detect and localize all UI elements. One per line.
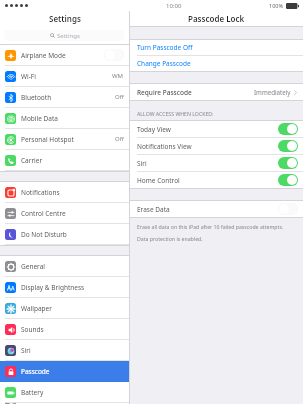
staticText: Carrier [21, 156, 43, 165]
button[interactable]: Personal Hotspot [0, 129, 129, 149]
staticText: Require Passcode [137, 88, 192, 97]
staticText: ALLOW ACCESS WHEN LOCKED: [137, 110, 214, 117]
button[interactable]: General [0, 256, 129, 276]
button[interactable]: Control Centre [0, 203, 129, 223]
button[interactable]: Notifications [0, 182, 129, 202]
button[interactable]: Settings [5, 30, 124, 41]
button[interactable]: Passcode [0, 361, 129, 381]
button[interactable]: On [278, 123, 298, 135]
staticText: Today View [137, 125, 171, 134]
staticText: Personal Hotspot [21, 135, 74, 144]
button[interactable]: On [278, 174, 298, 186]
button[interactable]: Change Passcode [130, 56, 303, 71]
staticText: Bluetooth [21, 93, 52, 102]
staticText: Home Control [137, 176, 180, 185]
button[interactable]: Mobile Data [0, 108, 129, 128]
staticText: Settings [49, 13, 81, 24]
button[interactable]: Erase Data [130, 201, 303, 217]
staticText: WM [112, 72, 124, 80]
button[interactable]: Airplane Mode [0, 45, 129, 65]
button[interactable]: Require Passcode [130, 84, 303, 100]
staticText: Siri [137, 159, 147, 168]
staticText: Erase all data on this iPad after 10 fai… [137, 223, 284, 230]
button[interactable]: Today View [130, 121, 303, 137]
staticText: Passcode [21, 367, 50, 376]
staticText: Control Centre [21, 209, 66, 218]
button[interactable]: On [278, 157, 298, 169]
staticText: Settings [57, 32, 80, 40]
staticText: 100% [269, 2, 284, 9]
staticText: Airplane Mode [21, 51, 66, 60]
button[interactable]: Siri [130, 155, 303, 171]
button[interactable]: Carrier [0, 150, 129, 170]
button[interactable]: Display & Brightness [0, 277, 129, 297]
button[interactable]: Notifications View [130, 138, 303, 154]
button[interactable]: Siri [0, 340, 129, 360]
staticText: Wi-Fi [21, 72, 36, 81]
staticText: Turn Passcode Off [137, 43, 193, 52]
staticText: Sounds [21, 325, 44, 334]
staticText: Battery [21, 388, 44, 397]
button[interactable]: Sounds [0, 319, 129, 339]
staticText: Wallpaper [21, 304, 52, 313]
staticText: Display & Brightness [21, 283, 85, 292]
button[interactable]: Battery [0, 382, 129, 402]
staticText: Mobile Data [21, 114, 58, 123]
button[interactable]: Wallpaper [0, 298, 129, 318]
button[interactable]: Turn Passcode Off [130, 40, 303, 55]
staticText: Off [115, 93, 124, 101]
button[interactable]: Wi-Fi [0, 66, 129, 86]
staticText: Siri [21, 346, 31, 355]
staticText: Notifications View [137, 142, 192, 151]
staticText: Data protection is enabled. [137, 235, 203, 242]
staticText: Change Passcode [137, 59, 191, 68]
staticText: Notifications [21, 188, 60, 197]
staticText: Erase Data [137, 205, 170, 214]
button[interactable]: Privacy [0, 403, 129, 404]
staticText: General [21, 262, 45, 271]
staticText: Immediately [254, 88, 291, 96]
staticText: Do Not Disturb [21, 230, 67, 239]
staticText: Passcode Lock [188, 13, 245, 24]
button[interactable]: Home Control [130, 172, 303, 188]
button[interactable]: On [278, 140, 298, 152]
button[interactable]: Do Not Disturb [0, 224, 129, 244]
button[interactable]: Bluetooth [0, 87, 129, 107]
staticText: Off [115, 135, 124, 143]
staticText: 10:00 [166, 2, 182, 10]
